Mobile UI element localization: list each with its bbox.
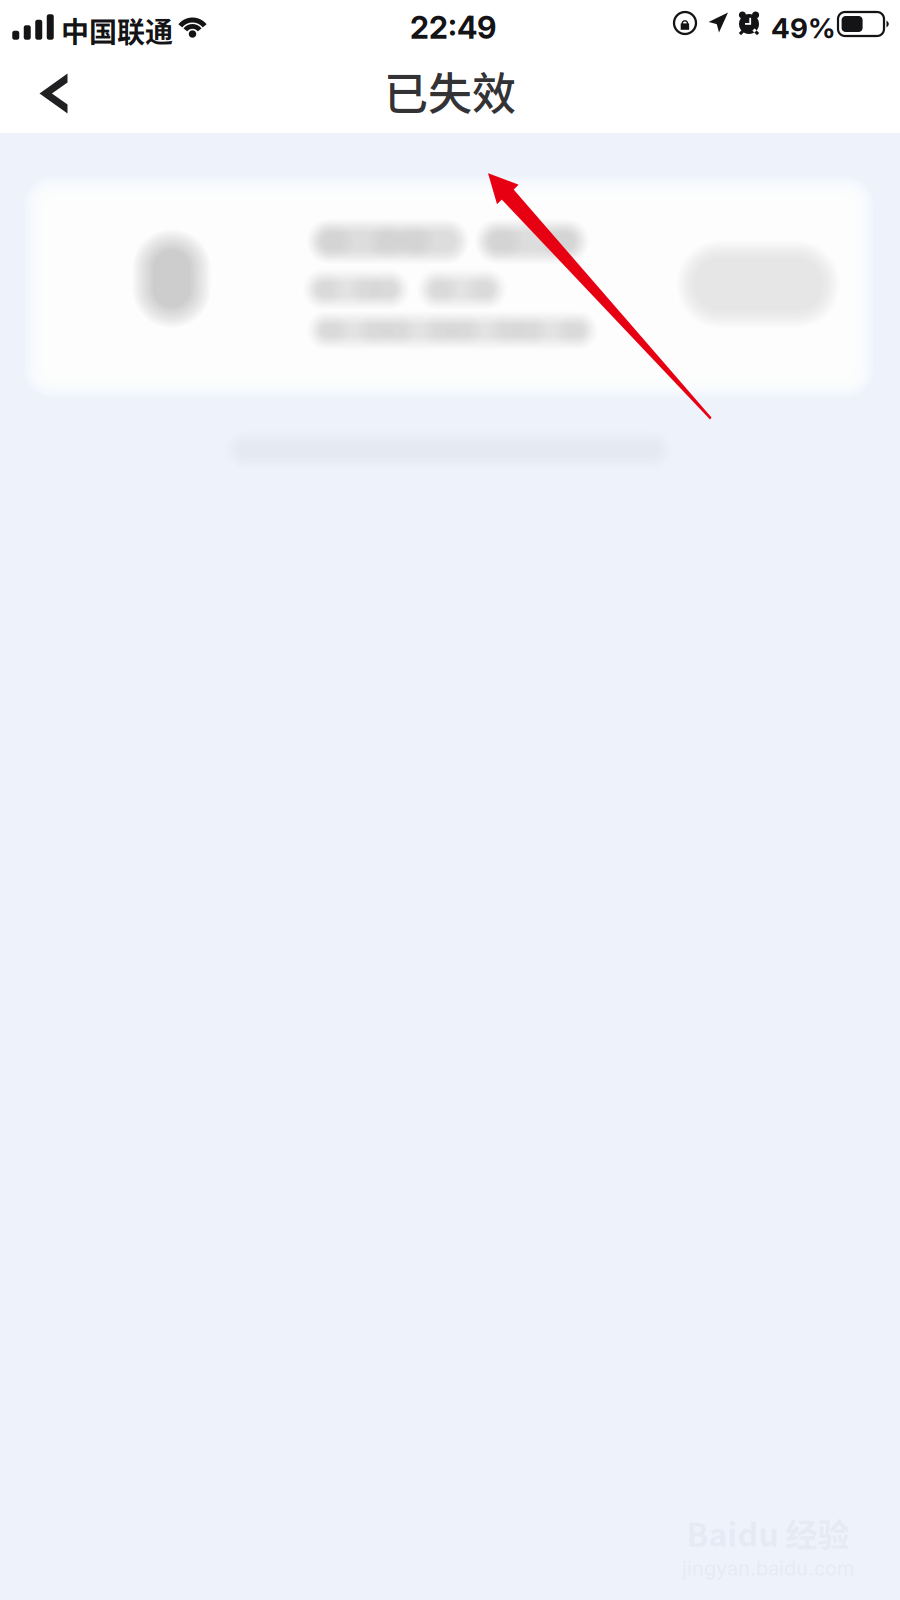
staticText: 中国联通	[61, 10, 173, 50]
staticText: 已失效	[384, 59, 516, 123]
staticText: 49%	[771, 11, 836, 45]
button[interactable]: 返回	[0, 55, 108, 133]
button[interactable]	[0, 0, 900, 1600]
staticText: 22:49	[410, 9, 496, 46]
staticText: Baidu 经验	[686, 1510, 849, 1556]
